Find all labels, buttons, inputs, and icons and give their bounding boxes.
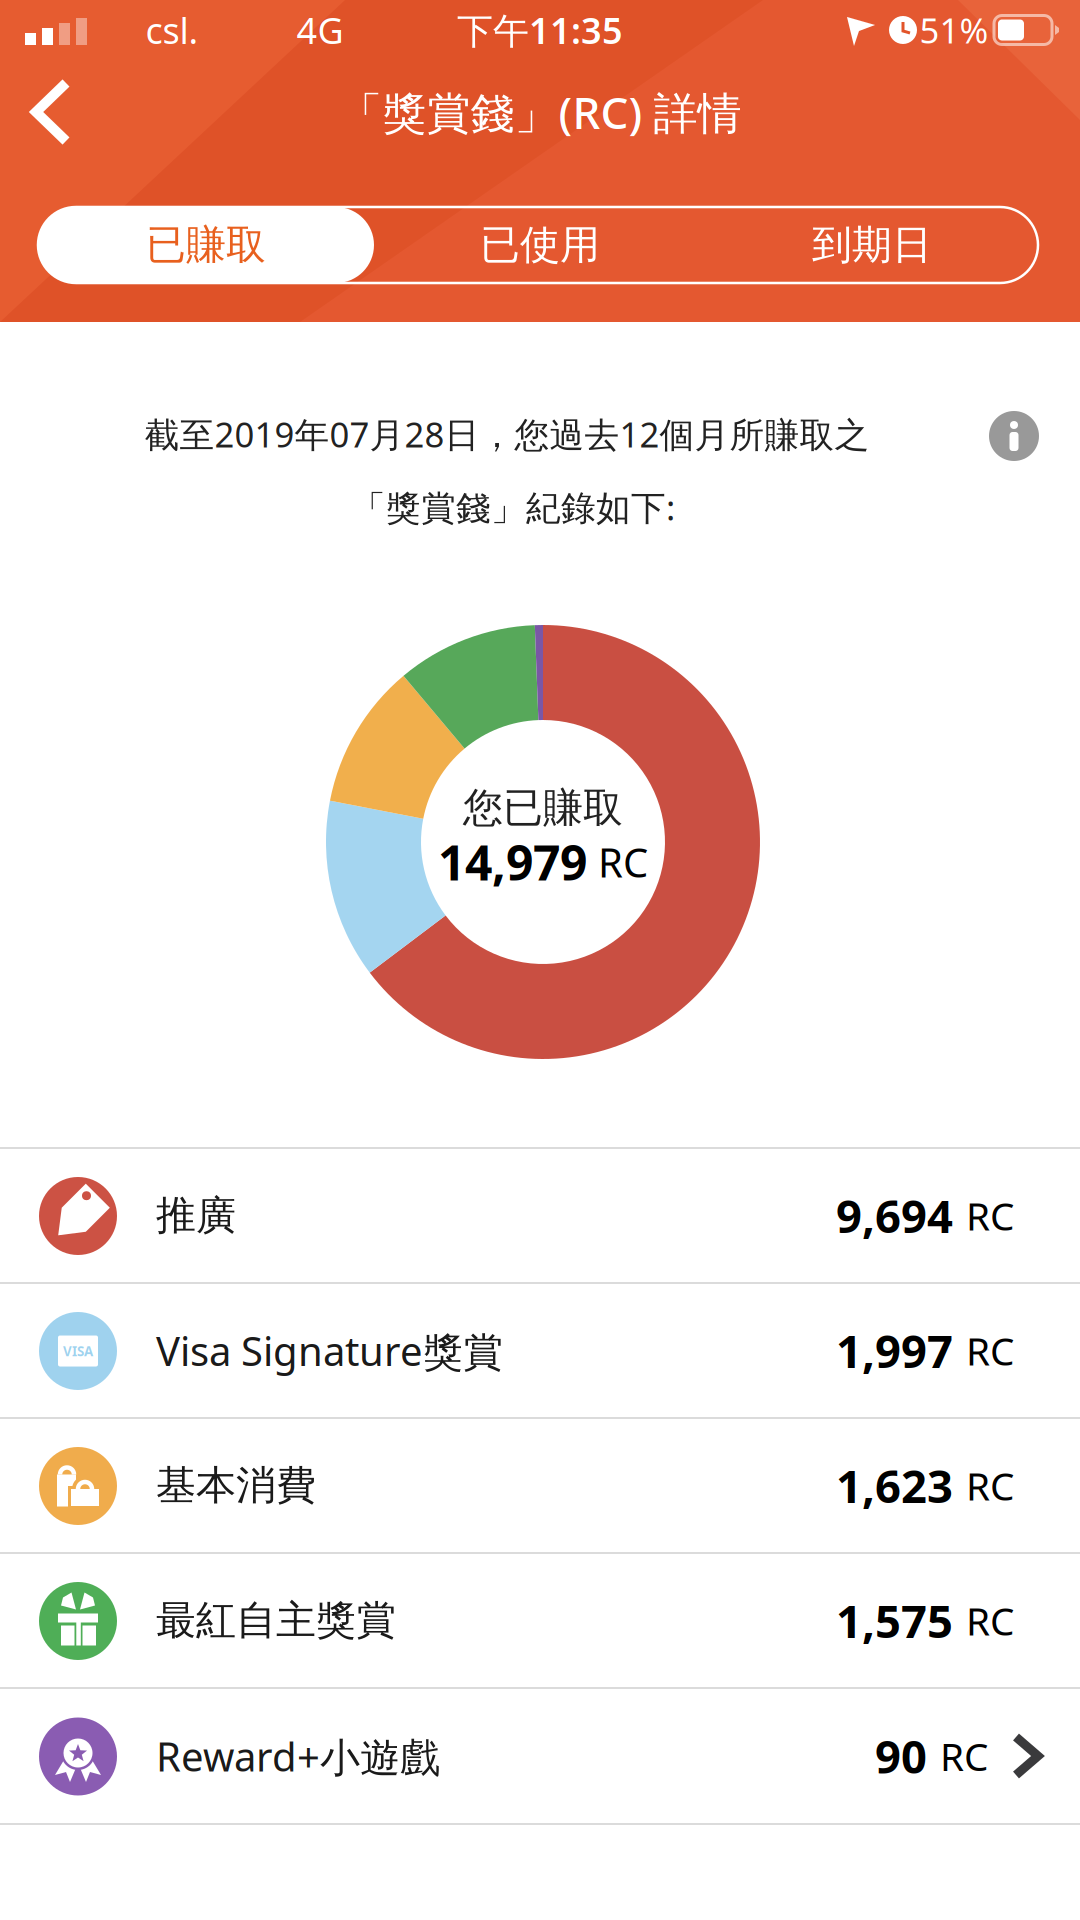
staticText: 到期日 — [812, 220, 932, 269]
staticText: VISA — [63, 1342, 93, 1360]
button[interactable]: 基本消費 — [0, 1419, 1080, 1552]
staticText: 推廣 — [156, 1191, 236, 1240]
staticText: 下午11:35 — [457, 6, 623, 54]
staticText: 51% — [919, 7, 988, 53]
button[interactable]: 最紅自主獎賞 — [0, 1554, 1080, 1687]
staticText: 您已賺取 — [463, 783, 623, 832]
staticText: RC — [966, 1190, 1014, 1241]
staticText: 4G — [296, 6, 343, 54]
staticText: 1,997 — [836, 1320, 953, 1381]
staticText: 「獎賞錢」紀錄如下: — [351, 484, 675, 530]
staticText: 截至2019年07月28日，您過去12個月所賺取之 — [144, 411, 869, 457]
button[interactable] — [20, 77, 84, 147]
staticText: 9,694 — [836, 1185, 953, 1246]
button[interactable]: 推廣 — [0, 1149, 1080, 1282]
staticText: RC — [598, 835, 648, 888]
staticText: 基本消費 — [156, 1461, 316, 1510]
staticText: 已賺取 — [146, 220, 266, 269]
staticText: RC — [966, 1460, 1014, 1511]
button[interactable] — [989, 411, 1039, 461]
staticText: 90 — [875, 1726, 927, 1786]
button[interactable]: 已賺取 — [38, 207, 374, 283]
staticText: 已使用 — [480, 220, 600, 269]
staticText: csl. — [145, 6, 198, 54]
staticText: 1,623 — [836, 1455, 953, 1516]
staticText: Reward+小遊戲 — [156, 1729, 440, 1783]
staticText: RC — [940, 1730, 988, 1782]
staticText: RC — [966, 1325, 1014, 1376]
button[interactable]: Reward+小遊戲 — [0, 1689, 1080, 1822]
staticText: 「獎賞錢」(RC) 詳情 — [338, 83, 741, 141]
button[interactable]: 到期日 — [707, 207, 1037, 283]
staticText: 14,979 — [438, 830, 587, 894]
staticText: Visa Signature獎賞 — [156, 1324, 503, 1377]
button[interactable]: 已使用 — [375, 207, 705, 283]
button[interactable]: Visa Signature獎賞 — [0, 1284, 1080, 1417]
staticText: 1,575 — [836, 1590, 953, 1651]
staticText: RC — [966, 1595, 1014, 1646]
staticText: 最紅自主獎賞 — [156, 1596, 396, 1645]
